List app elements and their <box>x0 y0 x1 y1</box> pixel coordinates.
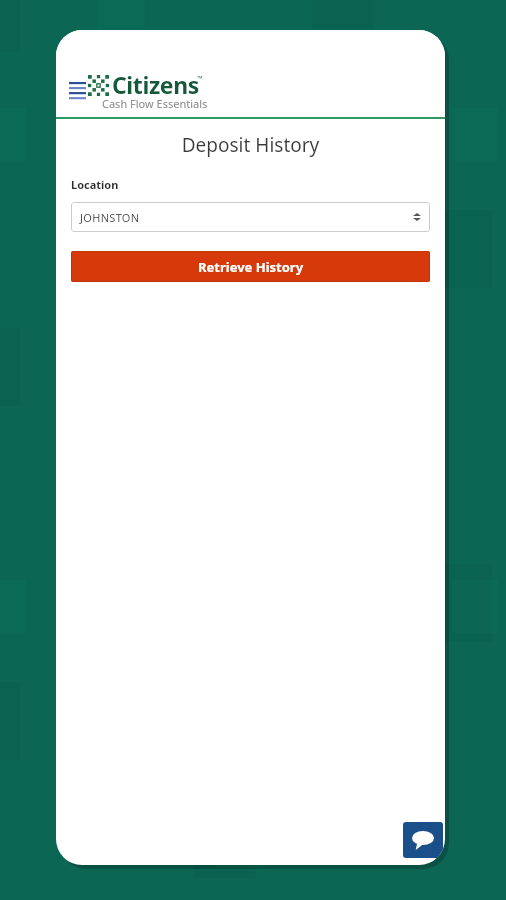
staticText: Retrieve History <box>198 258 304 276</box>
staticText: JOHNSTON <box>80 210 140 225</box>
staticText: Location <box>71 177 119 192</box>
staticText: Cash Flow Essentials <box>102 96 208 111</box>
button[interactable]: Open navigation menu <box>62 74 92 104</box>
button[interactable]: Open chat <box>403 822 443 858</box>
staticText: Deposit History <box>56 132 445 158</box>
staticText: ™ <box>197 74 203 84</box>
button[interactable]: Retrieve History <box>71 251 430 282</box>
button[interactable]: JOHNSTON <box>71 202 430 232</box>
staticText: Citizens <box>112 69 199 100</box>
